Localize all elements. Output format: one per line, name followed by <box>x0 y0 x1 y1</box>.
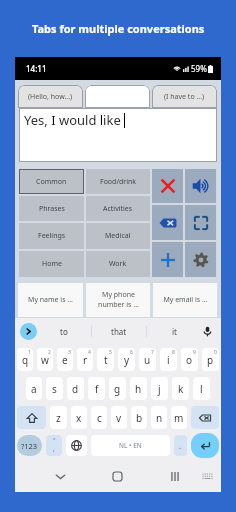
staticText: 59% <box>191 63 207 74</box>
button[interactable]: Hide keyboard <box>196 465 218 487</box>
staticText: 0 <box>214 349 217 356</box>
button[interactable]: v <box>111 406 127 429</box>
button[interactable]: n <box>151 406 167 429</box>
button[interactable]: Recents <box>164 465 186 487</box>
button[interactable]: Shift <box>17 406 46 429</box>
staticText: 7 <box>151 349 154 356</box>
staticText: 3 <box>68 349 71 356</box>
button[interactable]: a <box>26 377 42 400</box>
button[interactable]: Common <box>19 169 84 194</box>
button[interactable]: to <box>37 318 91 345</box>
button[interactable]: m <box>171 406 187 429</box>
staticText: a <box>31 382 37 396</box>
staticText: j <box>158 382 161 396</box>
staticText: Work <box>109 259 127 269</box>
staticText: 6 <box>130 349 133 356</box>
staticText: Phrases <box>39 204 65 214</box>
button[interactable]: Speak <box>185 169 216 203</box>
staticText: y <box>124 353 130 367</box>
staticText: g <box>114 382 121 396</box>
button[interactable]: ?123 <box>17 435 42 456</box>
staticText: 14:11 <box>26 63 47 74</box>
staticText: Medical <box>105 231 131 241</box>
button[interactable]: Clear <box>152 169 183 203</box>
staticText: ?123 <box>21 441 38 451</box>
button[interactable]: Enter <box>191 433 219 458</box>
staticText: d <box>72 382 79 396</box>
staticText: Food/drink <box>100 177 137 187</box>
button[interactable]: w <box>37 348 53 371</box>
staticText: x <box>76 411 82 425</box>
button[interactable]: o <box>181 348 198 371</box>
staticText: 9 <box>193 349 196 356</box>
staticText: NL • EN <box>119 441 142 450</box>
button[interactable]: g <box>109 377 126 400</box>
button[interactable]: x <box>71 406 87 429</box>
button[interactable]: z <box>50 406 67 429</box>
staticText: (I have to ...) <box>164 92 205 102</box>
button[interactable]: h <box>130 377 147 400</box>
button[interactable]: My email is ... <box>153 283 217 317</box>
button[interactable]: Backspace <box>191 406 219 429</box>
button[interactable]: that <box>92 318 146 345</box>
button[interactable]: . <box>174 435 187 456</box>
button[interactable]: Fullscreen <box>185 205 216 240</box>
button[interactable]: Add <box>152 242 183 277</box>
staticText: n <box>156 411 163 425</box>
staticText: Activities <box>103 204 133 214</box>
button[interactable]: Medical <box>86 223 150 249</box>
button[interactable]: ° <box>46 435 62 456</box>
staticText: q <box>22 353 29 367</box>
button[interactable]: s <box>46 377 63 400</box>
button[interactable]: f <box>88 377 105 400</box>
staticText: z <box>56 411 61 425</box>
button[interactable]: t <box>97 348 114 371</box>
button[interactable]: l <box>193 377 210 400</box>
staticText: 4 <box>88 349 91 356</box>
staticText: . <box>179 440 182 451</box>
button[interactable]: j <box>151 377 168 400</box>
button[interactable]: Home <box>106 465 128 487</box>
button[interactable]: b <box>131 406 147 429</box>
staticText: 1 <box>28 349 31 356</box>
button[interactable]: e <box>57 348 73 371</box>
button[interactable]: Work <box>86 251 150 277</box>
staticText: m <box>174 411 184 425</box>
staticText: c <box>97 411 102 425</box>
button[interactable]: Activities <box>86 196 150 221</box>
button[interactable] <box>85 85 150 108</box>
button[interactable]: y <box>118 348 135 371</box>
button[interactable]: NL • EN <box>91 435 170 456</box>
staticText: My phone number is ... <box>98 290 139 310</box>
staticText: Feelings <box>38 231 66 241</box>
button[interactable]: r <box>77 348 93 371</box>
button[interactable]: d <box>67 377 84 400</box>
button[interactable]: (Hello, how...) <box>18 85 83 108</box>
staticText: Common <box>36 177 67 187</box>
staticText: 2 <box>48 349 51 356</box>
staticText: f <box>95 382 99 396</box>
button[interactable]: My name is ... <box>18 283 83 317</box>
staticText: v <box>116 411 122 425</box>
button[interactable]: (I have to ...) <box>152 85 217 108</box>
button[interactable]: More suggestions <box>20 323 37 340</box>
staticText: Home <box>42 259 62 269</box>
button[interactable]: k <box>172 377 189 400</box>
button[interactable]: Backspace <box>152 205 183 240</box>
button[interactable]: Settings <box>185 242 216 277</box>
button[interactable]: u <box>139 348 156 371</box>
button[interactable]: q <box>17 348 33 371</box>
button[interactable]: c <box>91 406 107 429</box>
button[interactable]: Language <box>66 435 87 456</box>
button[interactable]: Food/drink <box>86 169 150 194</box>
button[interactable]: p <box>202 348 219 371</box>
button[interactable]: it <box>147 318 201 345</box>
button[interactable]: Feelings <box>19 223 84 249</box>
button[interactable]: Home <box>19 251 84 277</box>
button[interactable]: i <box>160 348 177 371</box>
button[interactable]: Phrases <box>19 196 84 221</box>
button[interactable]: My phone number is ... <box>86 283 150 317</box>
staticText: Yes, I would like <box>24 111 121 129</box>
button[interactable]: Voice input <box>201 325 214 338</box>
button[interactable]: Back <box>49 465 71 487</box>
